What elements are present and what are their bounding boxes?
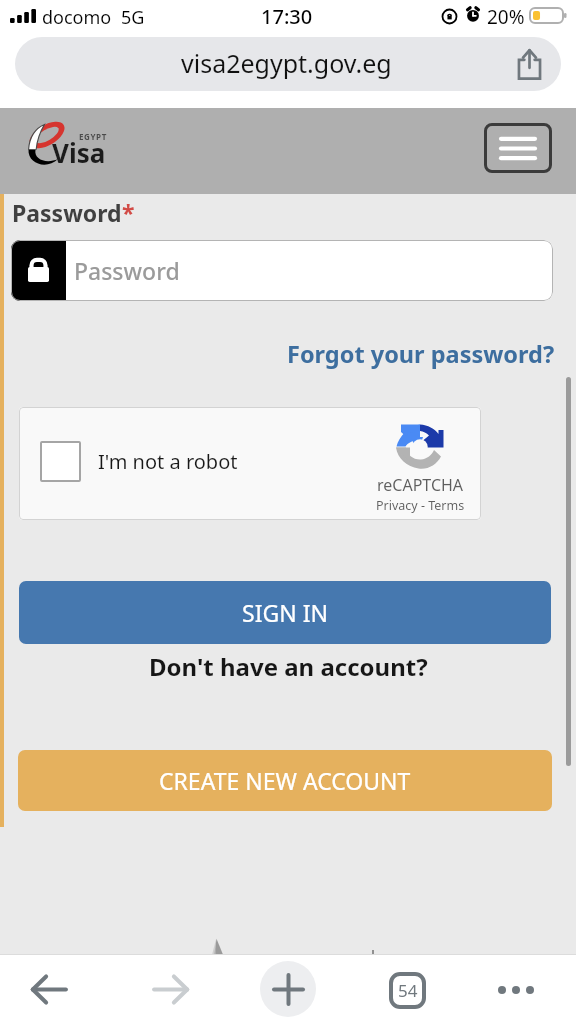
button[interactable]: Share (507, 42, 551, 86)
button[interactable]: Forward (145, 964, 196, 1015)
staticText: reCAPTCHA (377, 474, 464, 496)
button[interactable]: SIGN IN (19, 581, 551, 644)
staticText: EGYPT (79, 131, 107, 142)
staticText: CREATE NEW ACCOUNT (159, 765, 411, 796)
button[interactable]: I'm not a robot checkbox (40, 441, 81, 482)
button[interactable]: New tab (260, 961, 316, 1017)
staticText: 20% (487, 4, 525, 30)
staticText: Visa (52, 135, 106, 170)
staticText: 17:30 (261, 3, 313, 30)
staticText: Don't have an account? (149, 650, 428, 683)
button[interactable]: Back (23, 964, 74, 1015)
button[interactable]: Password (11, 240, 553, 301)
staticText: SIGN IN (242, 597, 328, 628)
staticText: visa2egypt.gov.eg (181, 46, 392, 80)
staticText: docomo (42, 5, 112, 30)
staticText: Privacy - Terms (376, 497, 465, 514)
staticText: * (122, 197, 135, 228)
button[interactable]: Forgot your password? (287, 338, 555, 370)
button[interactable]: CREATE NEW ACCOUNT (18, 750, 552, 811)
button[interactable]: More (490, 964, 542, 1016)
button[interactable]: Tabs (389, 972, 426, 1009)
staticText: Password (12, 197, 122, 228)
staticText: I'm not a robot (98, 448, 238, 475)
staticText: Password (74, 255, 180, 286)
button[interactable]: Menu (484, 123, 552, 173)
staticText: 54 (398, 979, 418, 1002)
staticText: 5G (121, 5, 145, 30)
button[interactable]: visa2egypt.gov.eg (15, 37, 561, 91)
